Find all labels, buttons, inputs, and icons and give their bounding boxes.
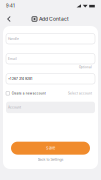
button[interactable]: Create a new account [6, 91, 46, 95]
staticText: Handle [8, 37, 19, 41]
staticText: 9:41 [6, 3, 15, 9]
staticText: Select account [68, 92, 92, 95]
staticText: +1 267 314 9281 [8, 77, 32, 81]
staticText: Account [8, 105, 21, 109]
button[interactable]: +1 267 314 9281 [6, 73, 95, 84]
button[interactable]: Save [11, 142, 90, 155]
staticText: Optional [79, 65, 92, 69]
staticText: Email [8, 57, 17, 61]
staticText: Save [46, 146, 55, 150]
staticText: Create a new account [12, 92, 46, 95]
staticText: Add Contact [39, 16, 69, 22]
button[interactable]: Email [6, 53, 95, 64]
button[interactable]: Select account [68, 92, 95, 95]
button[interactable]: Back to Settings [37, 156, 63, 163]
button[interactable]: Back [4, 13, 14, 25]
button[interactable]: Handle [6, 33, 95, 44]
staticText: Back to Settings [37, 157, 63, 161]
